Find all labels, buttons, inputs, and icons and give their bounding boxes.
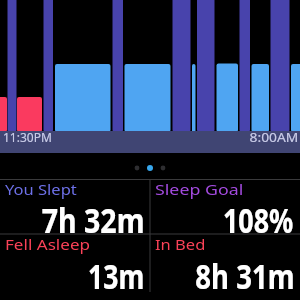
button[interactable]: You Slept	[0, 180, 149, 233]
staticText: 11:30PM	[3, 129, 52, 145]
staticText: 7h 32m	[42, 197, 145, 243]
staticText: You Slept	[5, 180, 77, 199]
button[interactable]: In Bed	[151, 234, 300, 292]
button[interactable]: Fell Asleep	[0, 234, 149, 292]
staticText: In Bed	[155, 235, 206, 254]
staticText: 8:00AM	[250, 129, 299, 145]
staticText: Fell Asleep	[5, 235, 90, 254]
button[interactable]: 11:30PM	[0, 0, 300, 153]
button[interactable]: Sleep Goal	[151, 180, 300, 233]
staticText: 8h 31m	[195, 253, 295, 299]
staticText: Sleep Goal	[155, 180, 244, 199]
staticText: 108%	[223, 197, 294, 243]
staticText: 13m	[88, 253, 145, 299]
